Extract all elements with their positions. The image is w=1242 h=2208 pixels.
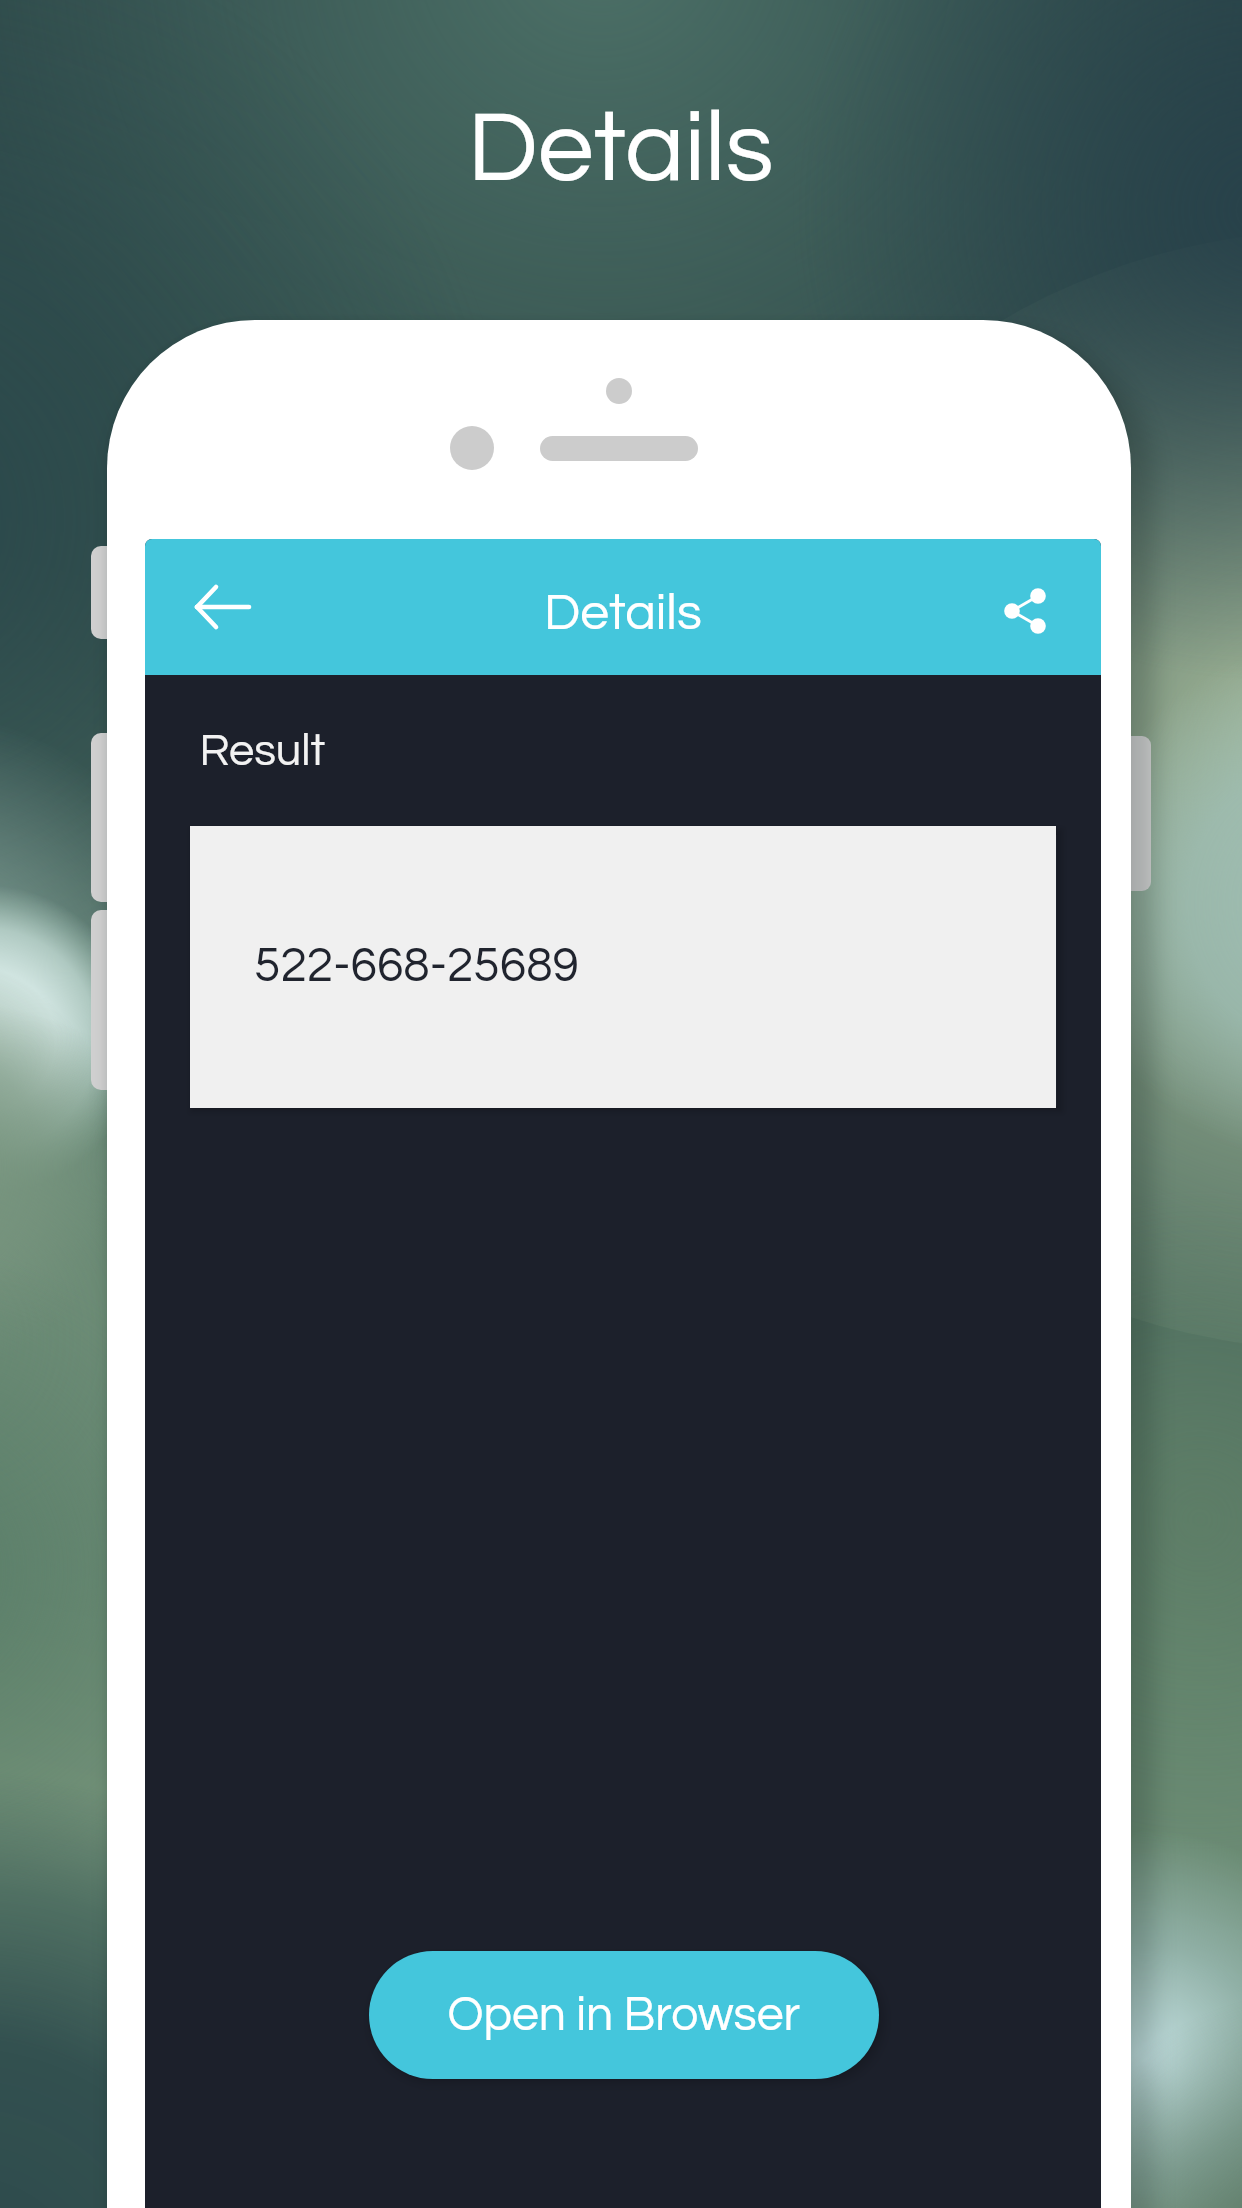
button[interactable]: Share [968,561,1060,653]
button[interactable] [190,826,1056,1108]
button[interactable] [369,1951,879,2079]
button[interactable]: Back [177,563,265,651]
